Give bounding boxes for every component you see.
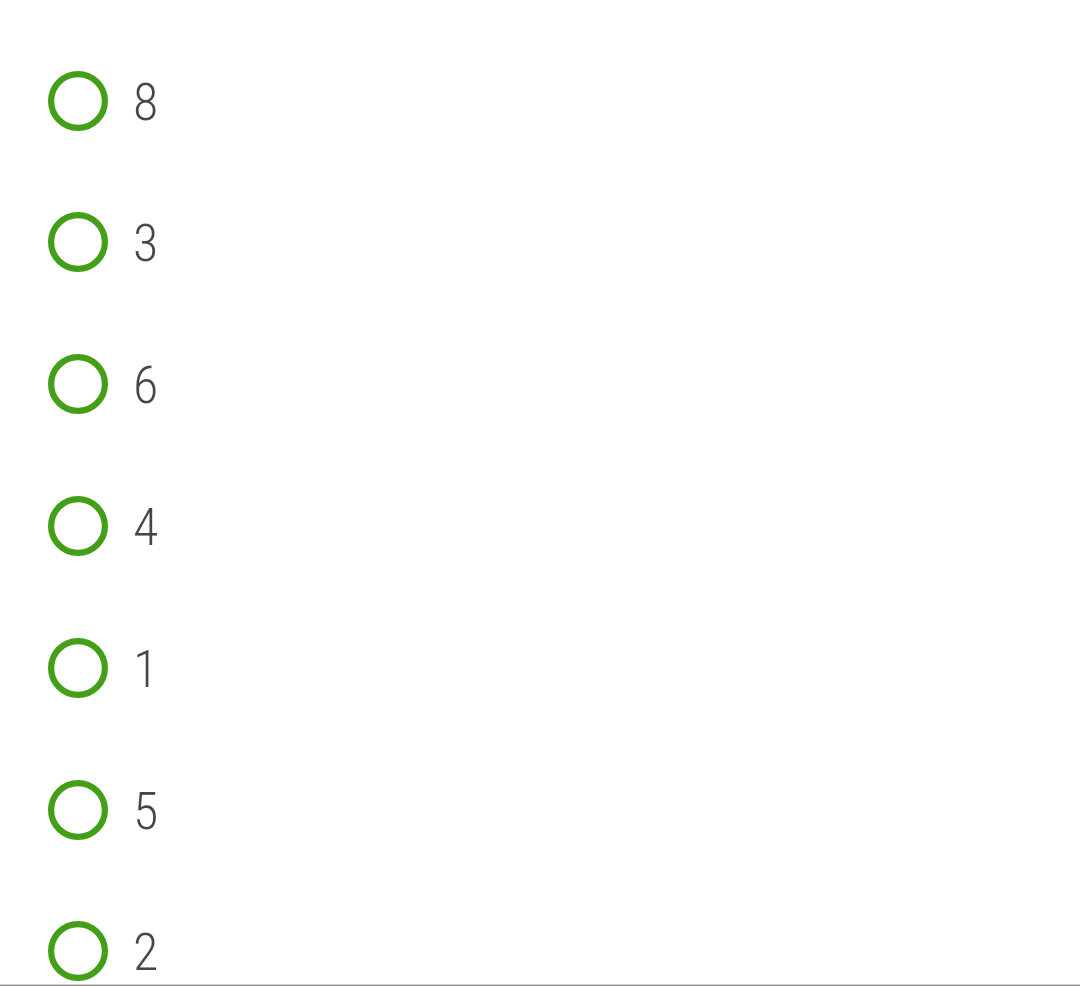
button[interactable]: 2: [0, 880, 1080, 986]
staticText: 6: [133, 355, 159, 416]
staticText: 5: [133, 781, 159, 842]
button[interactable]: 1: [0, 597, 1080, 739]
button[interactable]: 3: [0, 171, 1080, 313]
staticText: 8: [133, 72, 159, 133]
button[interactable]: 8: [0, 30, 1080, 172]
staticText: 4: [133, 497, 159, 558]
staticText: 2: [133, 922, 159, 983]
staticText: 1: [133, 639, 159, 700]
button[interactable]: 5: [0, 739, 1080, 881]
staticText: 3: [133, 213, 159, 274]
button[interactable]: 6: [0, 313, 1080, 455]
button[interactable]: 4: [0, 455, 1080, 597]
